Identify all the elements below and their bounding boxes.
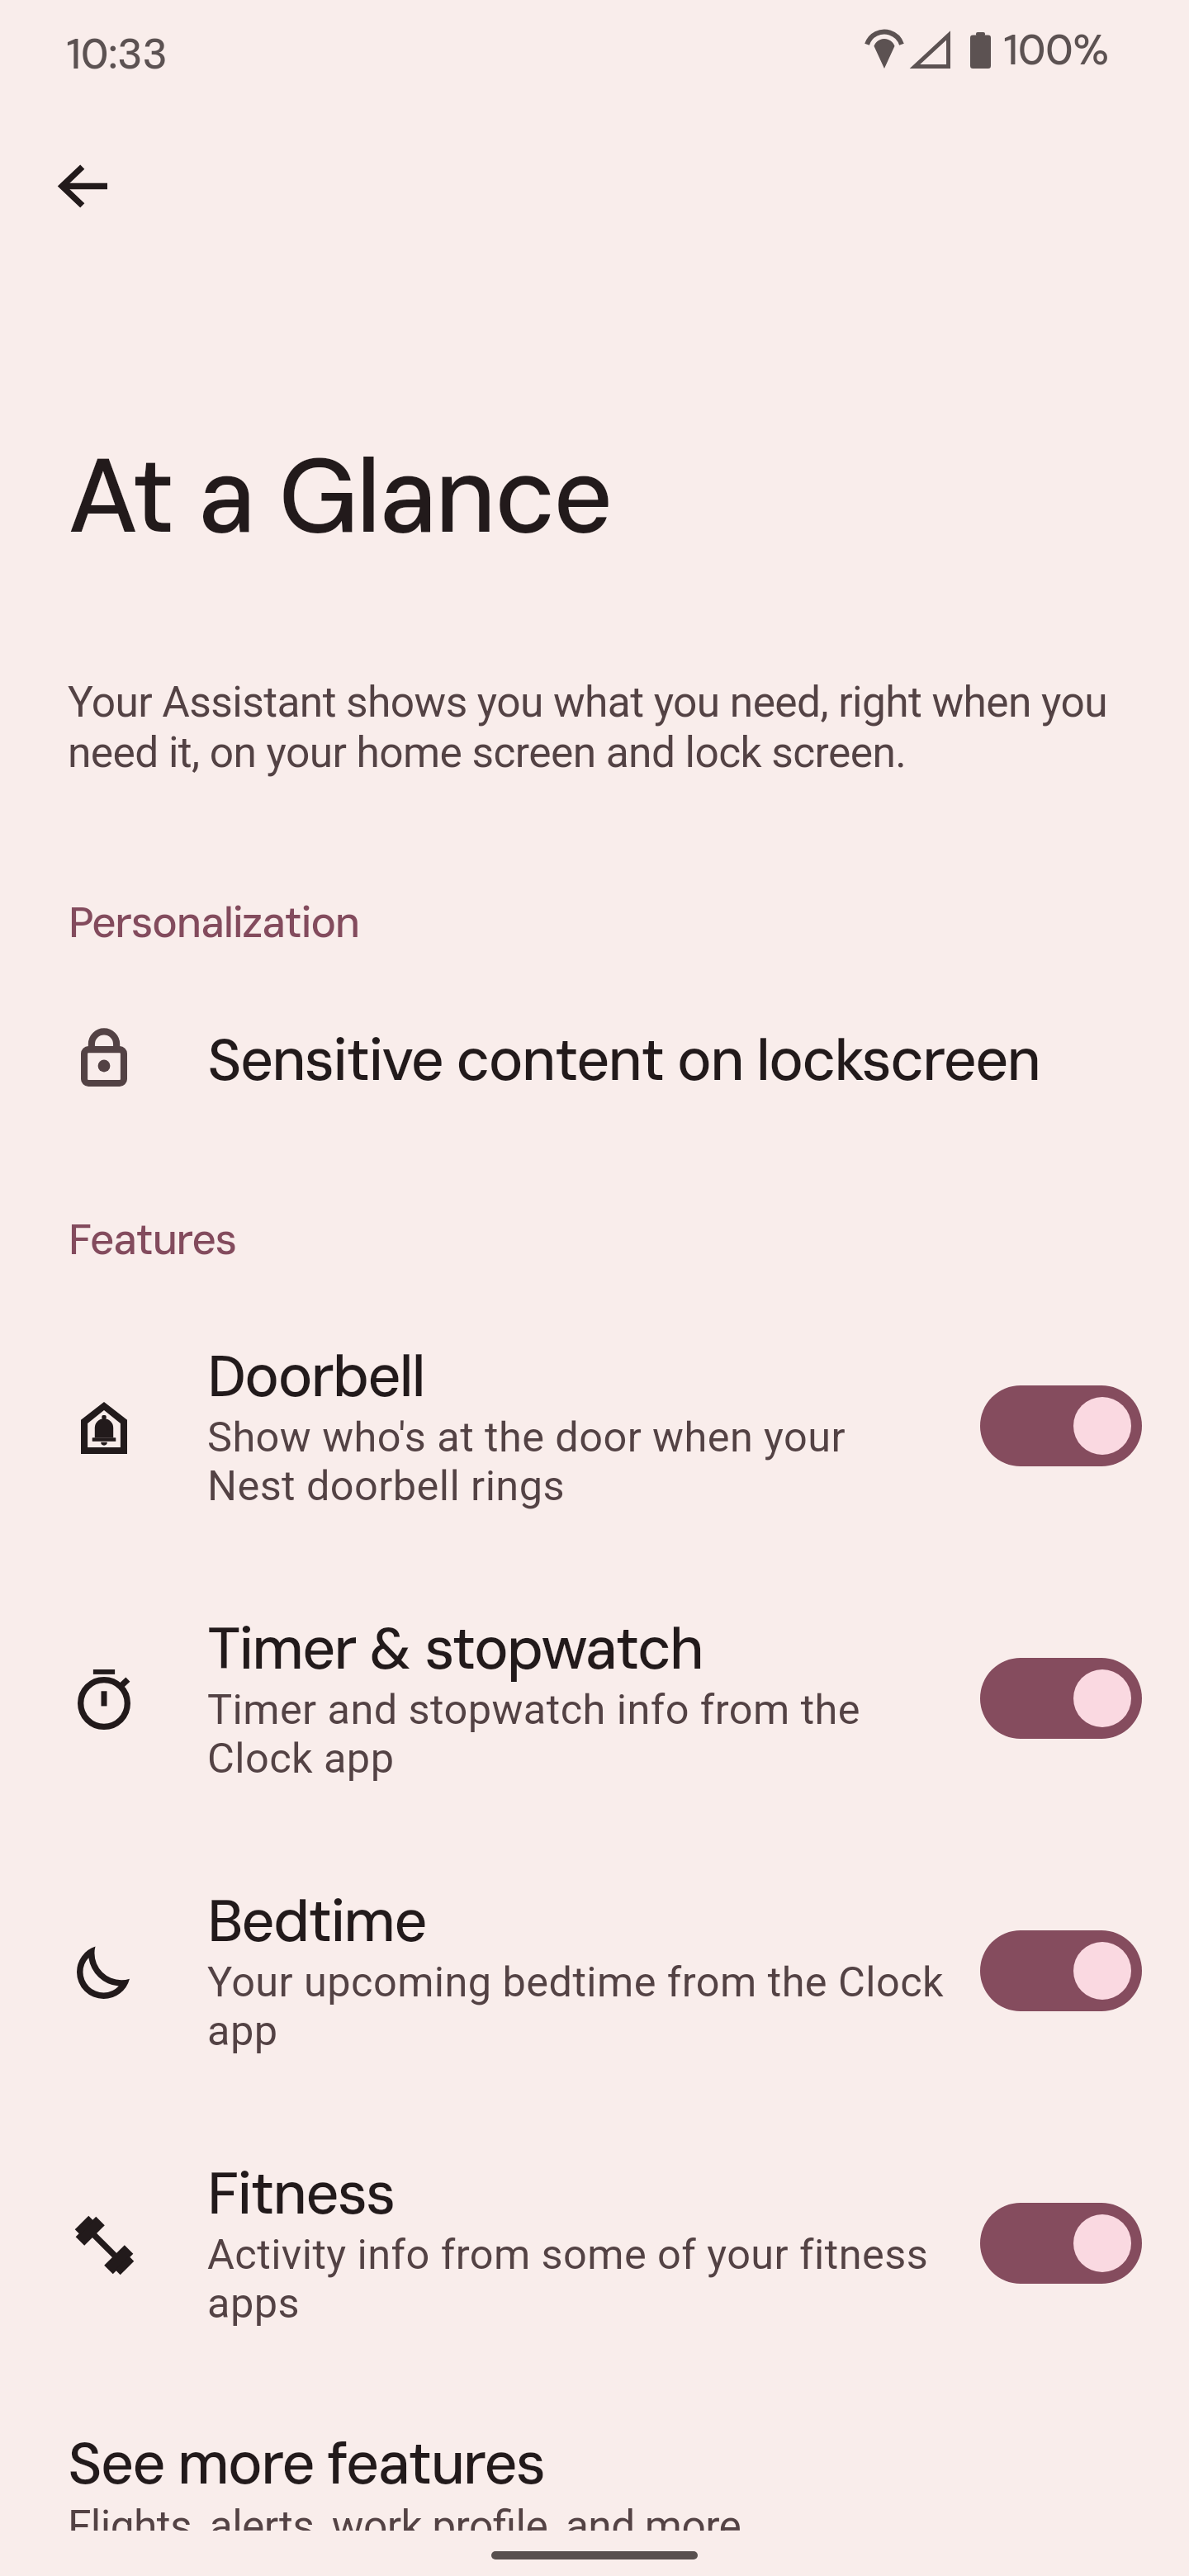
- staticText: Your Assistant shows you what you need, …: [68, 677, 1189, 778]
- staticText: At a Glance: [68, 426, 611, 565]
- button[interactable]: Fitness: [0, 2148, 1189, 2421]
- staticText: Personalization: [69, 896, 360, 950]
- button[interactable]: Toggle: [980, 1385, 1142, 1466]
- button[interactable]: Toggle: [980, 1930, 1142, 2011]
- staticText: Flights, alerts, work profile, and more: [68, 2501, 741, 2531]
- staticText: Your upcoming bedtime from the Clock app: [207, 1958, 1099, 2055]
- button[interactable]: See more features: [0, 2427, 1189, 2531]
- staticText: Doorbell: [207, 1339, 424, 1413]
- button[interactable]: Back: [15, 116, 154, 255]
- staticText: Timer & stopwatch: [207, 1612, 703, 1686]
- button[interactable]: Toggle: [980, 1658, 1142, 1739]
- staticText: Sensitive content on lockscreen: [207, 1023, 1040, 1097]
- staticText: Timer and stopwatch info from the Clock …: [207, 1685, 1099, 1783]
- button[interactable]: Sensitive content on lockscreen: [0, 1004, 1189, 1138]
- staticText: 10:33: [66, 27, 168, 82]
- button[interactable]: Bedtime: [0, 1876, 1189, 2148]
- staticText: See more features: [68, 2427, 545, 2501]
- staticText: Show who's at the door when your Nest do…: [207, 1413, 1099, 1510]
- staticText: Features: [69, 1213, 236, 1267]
- staticText: Bedtime: [207, 1884, 426, 1958]
- staticText: Activity info from some of your fitness …: [207, 2230, 1099, 2327]
- staticText: Fitness: [207, 2157, 395, 2231]
- button[interactable]: Doorbell: [0, 1331, 1189, 1603]
- button[interactable]: Toggle: [980, 2203, 1142, 2284]
- staticText: 100%: [1003, 23, 1109, 78]
- button[interactable]: Timer & stopwatch: [0, 1603, 1189, 1876]
